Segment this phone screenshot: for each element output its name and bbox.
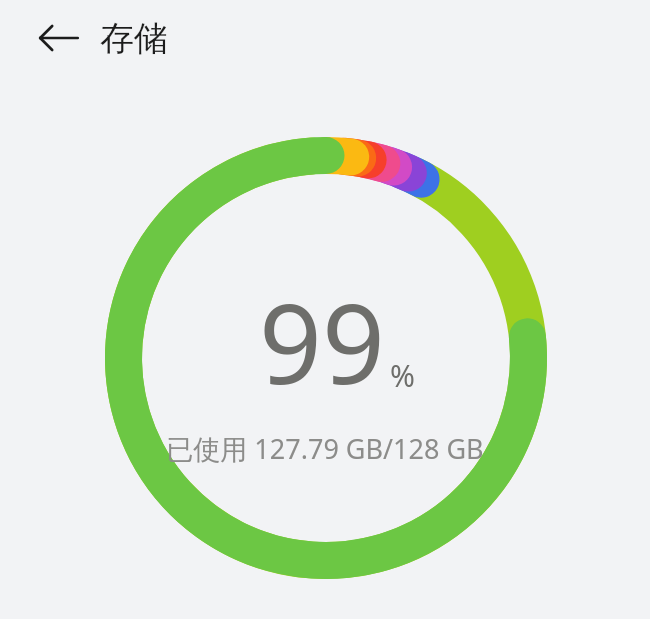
staticText: % (390, 355, 415, 396)
staticText: 存储 (100, 17, 168, 60)
button[interactable]: Back (30, 9, 88, 67)
staticText: 已使用 127.79 GB/128 GB (166, 430, 484, 467)
staticText: 99 (259, 266, 385, 416)
